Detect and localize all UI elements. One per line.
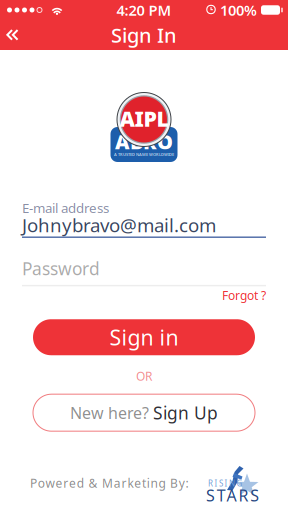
- staticText: RISING: [208, 478, 242, 489]
- staticText: A TRUSTED NAME WORLDWIDE: [114, 152, 174, 157]
- staticText: OR: [136, 368, 152, 384]
- staticText: Sign Up: [153, 401, 218, 424]
- button[interactable]: Sign in: [33, 319, 255, 355]
- staticText: ABRO: [115, 128, 173, 155]
- button[interactable]: Back: [0, 20, 25, 50]
- staticText: Forgot ?: [222, 287, 266, 303]
- staticText: STARS: [206, 485, 259, 506]
- button[interactable]: Forgot ?: [222, 286, 266, 303]
- staticText: E-mail address: [22, 199, 109, 217]
- staticText: Password: [22, 257, 100, 280]
- staticText: Sign In: [111, 22, 177, 48]
- staticText: New here?: [70, 402, 149, 423]
- staticText: AIPL: [119, 104, 168, 133]
- button[interactable]: New here?: [33, 394, 255, 431]
- staticText: 100%: [220, 0, 257, 20]
- staticText: 4:20 PM: [116, 0, 171, 20]
- staticText: Johnybravo@mail.com: [22, 213, 216, 237]
- staticText: Powered & Marketing By:: [30, 475, 189, 491]
- staticText: Sign in: [109, 323, 178, 351]
